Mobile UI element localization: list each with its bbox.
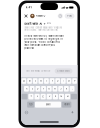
staticText: Tell me what to write xyxy=(26,70,50,72)
staticText: Anyone xyxy=(35,14,42,17)
staticText: L xyxy=(72,87,73,90)
staticText: K xyxy=(66,87,67,90)
staticText: U xyxy=(57,80,59,82)
staticText: Y xyxy=(52,80,53,82)
staticText: Q xyxy=(23,80,25,82)
staticText: C xyxy=(42,95,44,98)
staticText: return xyxy=(64,103,70,106)
staticText: S xyxy=(32,87,33,90)
staticText: In your own words, share the main points… xyxy=(24,34,63,50)
staticText: Post xyxy=(67,14,72,17)
staticText: M xyxy=(66,95,68,98)
staticText: O xyxy=(68,80,70,82)
staticText: BETA xyxy=(47,23,51,25)
staticText: T xyxy=(46,80,47,82)
staticText: J xyxy=(60,87,61,90)
staticText: B xyxy=(55,95,56,98)
staticText: V xyxy=(49,95,50,98)
staticText: N xyxy=(60,95,62,98)
button[interactable]: Close xyxy=(24,14,28,18)
staticText: Create draft xyxy=(57,70,70,72)
staticText: P xyxy=(74,80,75,82)
staticText: G xyxy=(48,87,50,90)
staticText: H xyxy=(54,87,56,90)
staticText: 9:41 xyxy=(25,6,31,9)
staticText: F xyxy=(43,87,44,90)
staticText: R xyxy=(40,80,41,82)
button[interactable]: Post xyxy=(63,13,74,19)
staticText: Share your content ideas and I'll help y… xyxy=(24,27,62,31)
button[interactable]: Create draft xyxy=(55,68,72,74)
staticText: X xyxy=(37,95,38,98)
button[interactable]: Anyone xyxy=(28,14,45,18)
staticText: D xyxy=(37,87,39,90)
staticText: I xyxy=(63,80,64,82)
staticText: A xyxy=(26,87,27,90)
staticText: 123 xyxy=(29,103,32,106)
staticText: space xyxy=(45,103,50,106)
staticText: Draft with AI xyxy=(24,22,42,25)
staticText: W xyxy=(28,80,30,82)
staticText: Z xyxy=(30,95,31,98)
button[interactable]: Drafts xyxy=(58,13,63,19)
